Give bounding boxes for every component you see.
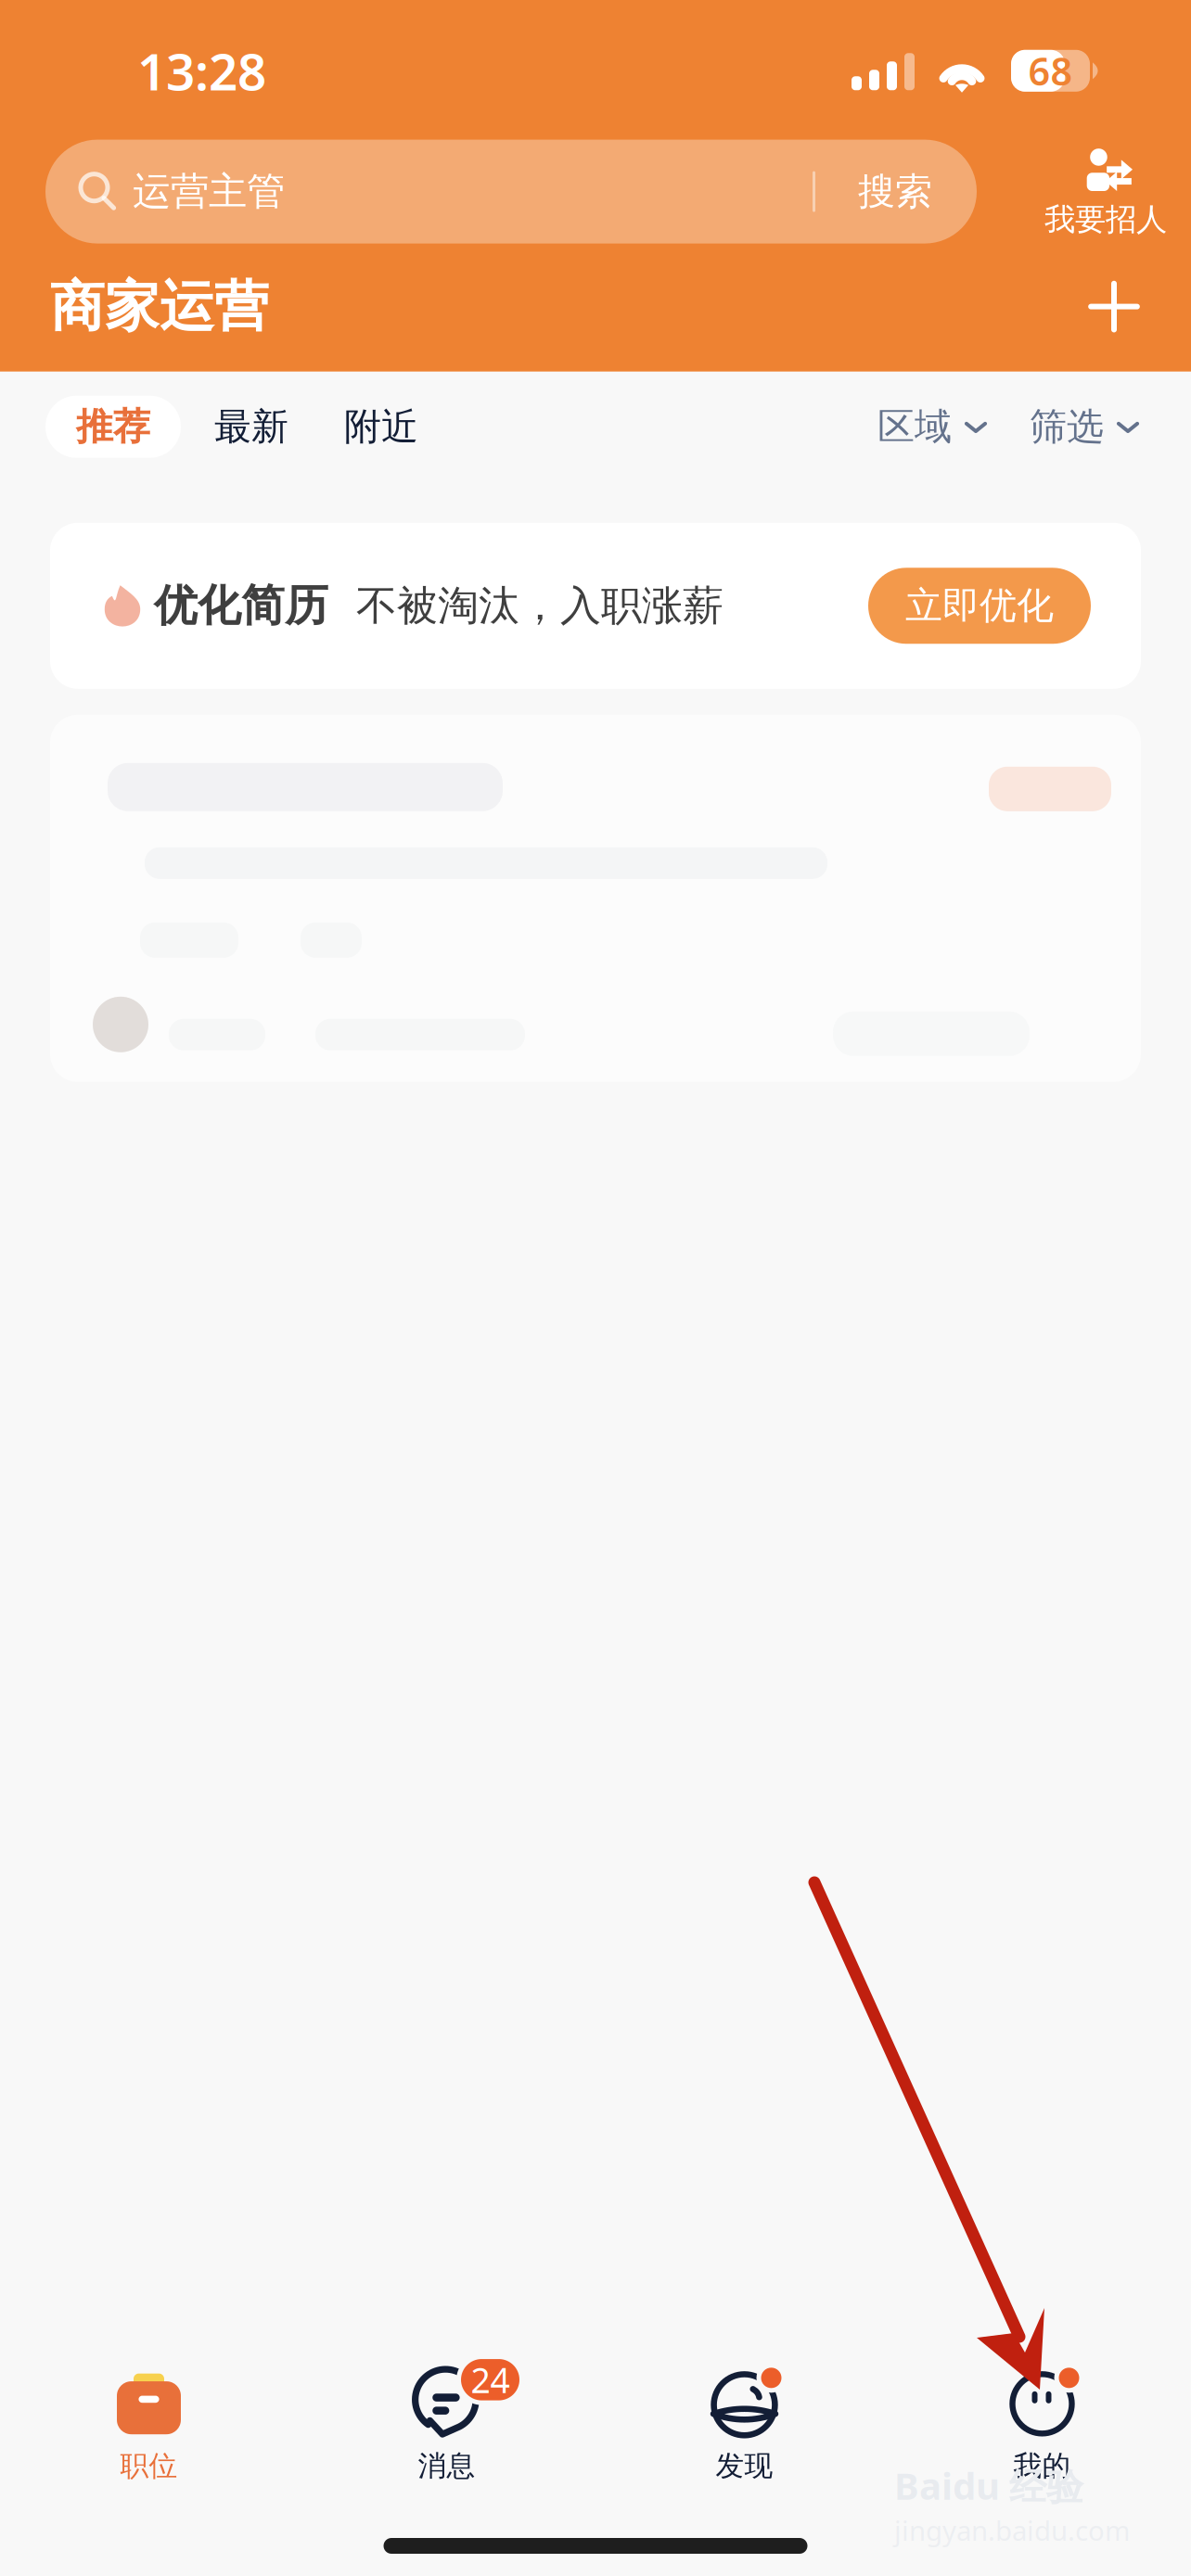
staticText: 我要招人	[1044, 200, 1167, 238]
staticText: 13:28	[137, 37, 266, 104]
button[interactable]: 24	[298, 2374, 595, 2483]
staticText: 68	[1028, 45, 1073, 96]
staticText: 发现	[716, 2448, 773, 2483]
button[interactable]: 我要招人	[1044, 145, 1167, 238]
staticText: 运营主管	[133, 168, 285, 215]
staticText: 搜索	[858, 169, 932, 214]
staticText: 立即优化	[905, 583, 1054, 629]
button[interactable]: 职位	[0, 2374, 298, 2483]
staticText: 24	[471, 2357, 510, 2403]
staticText: 区域	[877, 404, 952, 450]
button[interactable]: 最新	[192, 389, 311, 464]
staticText: 附近	[344, 404, 418, 450]
button[interactable]: 优化简历	[50, 523, 1141, 689]
button[interactable]: 筛选	[1030, 404, 1139, 450]
button[interactable]: 运营主管	[45, 140, 977, 244]
staticText: 优化简历	[154, 579, 328, 632]
button[interactable]: 附近	[322, 389, 441, 464]
staticText: 职位	[120, 2448, 178, 2483]
button[interactable]: 我的	[893, 2374, 1191, 2483]
staticText: 商家运营	[50, 273, 269, 340]
staticText: 最新	[214, 404, 288, 450]
button[interactable]: 推荐	[45, 396, 181, 458]
staticText: 筛选	[1030, 404, 1104, 450]
staticText: 消息	[418, 2448, 475, 2483]
button[interactable]: Add	[1082, 274, 1146, 339]
staticText: 我的	[1013, 2448, 1071, 2483]
staticText: 推荐	[76, 404, 150, 450]
staticText: 不被淘汰，入职涨薪	[356, 581, 724, 631]
button[interactable]: 发现	[595, 2374, 893, 2483]
staticText: jingyan.baidu.com	[894, 2512, 1130, 2548]
staticText: Baidu 经验	[894, 2461, 1083, 2510]
button[interactable]: 区域	[877, 404, 987, 450]
